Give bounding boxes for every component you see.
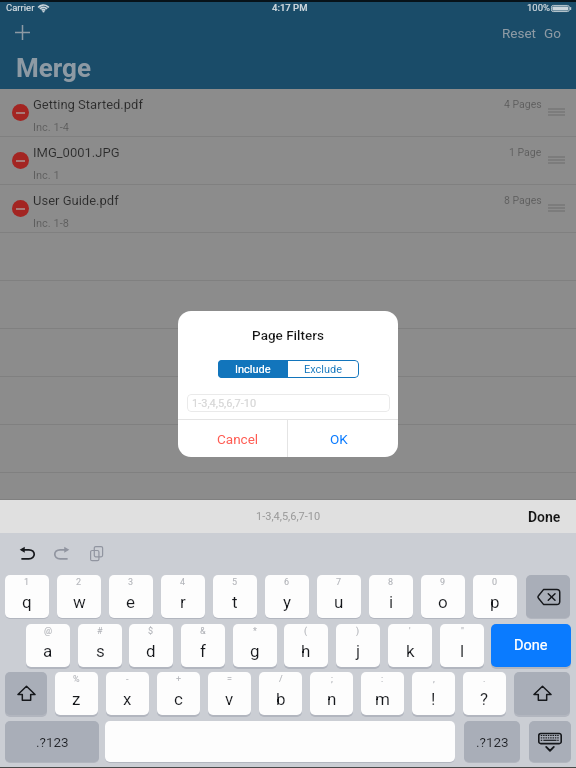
other: Shift: [533, 684, 552, 703]
staticText: 6: [284, 577, 290, 588]
button[interactable]: Hide keyboard: [529, 721, 571, 762]
staticText: s: [96, 641, 105, 661]
button[interactable]: :: [361, 672, 404, 715]
other: Reorder: [548, 109, 565, 115]
button[interactable]: 1: [5, 575, 49, 618]
staticText: .: [483, 674, 486, 685]
button[interactable]: Redo: [48, 540, 74, 566]
button[interactable]: 6: [265, 575, 309, 618]
staticText: y: [283, 592, 292, 612]
staticText: m: [375, 689, 390, 709]
staticText: 7: [336, 577, 342, 588]
staticText: r: [180, 592, 186, 612]
button[interactable]: ': [388, 624, 432, 667]
button[interactable]: ;: [310, 672, 353, 715]
other: Remove: [12, 200, 29, 217]
button[interactable]: 2: [57, 575, 101, 618]
button[interactable]: 9: [421, 575, 465, 618]
staticText: Inc. 1-8: [33, 217, 69, 230]
button[interactable]: ): [336, 624, 380, 667]
button[interactable]: Remove: [0, 185, 576, 233]
staticText: n: [327, 689, 337, 709]
staticText: Done: [514, 637, 548, 654]
staticText: a: [43, 641, 53, 661]
button[interactable]: Done: [513, 503, 576, 531]
button[interactable]: ": [440, 624, 484, 667]
button[interactable]: .?123: [5, 721, 99, 762]
staticText: (: [304, 626, 308, 637]
staticText: Cancel: [217, 431, 259, 447]
staticText: w: [73, 592, 86, 612]
staticText: 100%: [527, 2, 550, 13]
button[interactable]: 7: [317, 575, 361, 618]
button[interactable]: ,: [412, 672, 455, 715]
staticText: 2: [76, 577, 82, 588]
staticText: +: [176, 674, 182, 685]
staticText: 1-3,4,5,6,7-10: [256, 510, 321, 523]
button[interactable]: 1-3,4,5,6,7-10: [187, 394, 390, 412]
staticText: z: [72, 689, 81, 709]
button[interactable]: Add file: [8, 18, 36, 46]
button[interactable]: Reset: [496, 22, 543, 44]
staticText: 1 Page: [509, 146, 542, 158]
staticText: !: [431, 689, 436, 709]
button[interactable]: .?123: [464, 721, 520, 762]
staticText: OK: [330, 431, 348, 447]
staticText: *: [253, 626, 257, 637]
button[interactable]: #: [78, 624, 122, 667]
button[interactable]: Shift: [5, 672, 47, 715]
button[interactable]: Include: [218, 360, 288, 378]
staticText: 4 Pages: [504, 98, 542, 110]
button[interactable]: Go: [538, 22, 567, 44]
staticText: IMG_0001.JPG: [33, 145, 120, 160]
button[interactable]: @: [26, 624, 70, 667]
button[interactable]: Exclude: [288, 360, 359, 378]
button[interactable]: *: [233, 624, 277, 667]
button[interactable]: (: [284, 624, 328, 667]
staticText: j: [356, 641, 361, 661]
button[interactable]: 8: [369, 575, 413, 618]
button[interactable]: %: [55, 672, 98, 715]
button[interactable]: Remove: [0, 89, 576, 137]
button[interactable]: Paste: [83, 540, 109, 566]
staticText: 0: [492, 577, 498, 588]
staticText: $: [148, 626, 154, 637]
button[interactable]: &: [181, 624, 225, 667]
button[interactable]: .: [463, 672, 506, 715]
staticText: ,: [433, 674, 435, 685]
staticText: d: [146, 641, 156, 661]
button[interactable]: Backspace: [526, 575, 570, 618]
button[interactable]: Cancel: [178, 420, 287, 457]
staticText: Getting Started.pdf: [33, 97, 143, 112]
button[interactable]: 4: [161, 575, 205, 618]
button[interactable]: OK: [288, 420, 398, 457]
staticText: Page Filters: [178, 327, 398, 343]
button[interactable]: Done: [491, 624, 571, 667]
button[interactable]: Shift: [514, 672, 570, 715]
button[interactable]: Remove: [0, 137, 576, 185]
staticText: ": [461, 626, 464, 637]
button[interactable]: 5: [213, 575, 257, 618]
other: Reorder: [548, 205, 565, 211]
button[interactable]: $: [129, 624, 173, 667]
staticText: 3: [128, 577, 134, 588]
staticText: Inc. 1-4: [33, 121, 69, 134]
button[interactable]: =: [208, 672, 251, 715]
staticText: v: [225, 689, 234, 709]
button[interactable]: 0: [473, 575, 517, 618]
staticText: .?123: [36, 734, 69, 750]
button[interactable]: 3: [109, 575, 153, 618]
staticText: o: [438, 592, 448, 612]
staticText: i: [389, 592, 394, 612]
button[interactable]: -: [106, 672, 149, 715]
other: Remove: [12, 152, 29, 169]
other: Reorder: [548, 157, 565, 163]
button[interactable]: /: [259, 672, 302, 715]
button[interactable]: +: [157, 672, 200, 715]
staticText: ;: [331, 674, 333, 685]
button[interactable]: Undo: [14, 540, 40, 566]
staticText: Go: [544, 25, 561, 41]
staticText: Inc. 1: [33, 169, 60, 182]
